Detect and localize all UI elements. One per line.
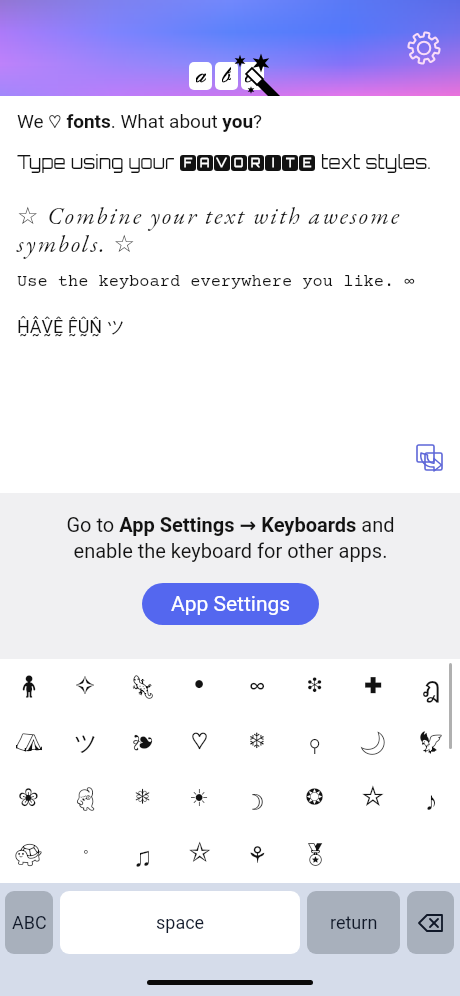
button[interactable]: Settings [402,26,446,70]
button[interactable]: ♫ [114,827,171,883]
button[interactable]: ABC [5,891,53,954]
staticText: Type using your [17,151,180,174]
staticText: 🏅 [301,842,329,868]
staticText: ⚘ [247,842,268,869]
staticText: ∞ [250,674,265,701]
staticText: b [222,62,231,90]
button[interactable]: 🦅 [402,715,460,771]
button[interactable]: return [307,891,400,954]
staticText: 🧍 [15,674,43,700]
staticText: ❉ [307,670,323,704]
staticText: ♫ [135,832,150,879]
staticText: Ĥ̰Â̰V̰̂Ḛ̂ F̰̂Ṵ̂N̰̂ ツ [17,316,126,339]
staticText: ⚲ [309,720,321,767]
button[interactable]: ✧ [57,659,114,715]
staticText: ☆ [361,780,385,819]
staticText: V [216,156,228,170]
staticText: ❧ [132,724,154,763]
staticText: ฎ [422,665,441,710]
staticText: ❄ [249,725,265,761]
staticText: I [272,156,275,170]
button[interactable]: ❀ [0,771,57,827]
staticText: ✩ [188,836,212,875]
button[interactable]: ❄ [228,715,286,771]
button[interactable]: 🌙 [344,715,402,771]
staticText: ☽ [251,776,264,823]
button[interactable]: Copy text [410,438,448,476]
button[interactable]: 🕺 [57,771,114,827]
button[interactable]: • [171,659,228,715]
button[interactable]: ∞ [228,659,286,715]
button[interactable]: Backspace [407,891,454,954]
button[interactable]: space [60,891,300,954]
staticText: ♡ [191,724,209,763]
staticText: ❅ [135,781,151,817]
staticText: ✚ [364,669,383,706]
button[interactable]: ❂ [286,771,344,827]
staticText: Go to App Settings → Keyboards and enabl… [66,513,395,563]
staticText: ❂ [305,780,325,819]
button[interactable]: ❧ [114,715,171,771]
staticText: 🦅 [417,730,445,756]
staticText: ⛺ [15,730,43,756]
staticText: R [251,156,261,170]
staticText: F [184,156,192,170]
staticText: 🐢 [14,842,44,869]
staticText: text styles. [316,151,432,174]
staticText: O [234,156,244,170]
staticText: ☆ Combine your text with awesome symbols… [17,200,417,259]
button[interactable]: ⚲ [286,715,344,771]
staticText: ☀ [190,782,209,816]
button[interactable]: App Settings [142,583,319,625]
button[interactable]: ⚘ [228,827,286,883]
staticText: space [156,912,205,933]
staticText: 🦎 [128,674,158,701]
button[interactable]: ❉ [286,659,344,715]
staticText: ❀ [18,780,39,819]
button[interactable]: ⛺ [0,715,57,771]
staticText: • [194,668,205,707]
button[interactable]: ฎ [402,659,460,715]
button[interactable]: ❅ [114,771,171,827]
button[interactable]: ☽ [228,771,286,827]
button[interactable]: ☆ [344,771,402,827]
staticText: Use the keyboard everywhere you like. ∞ [17,273,415,292]
button[interactable]: 🦎 [114,659,171,715]
staticText: ABC [12,912,47,933]
button[interactable]: 🧍 [0,659,57,715]
button[interactable]: 🐢 [0,827,57,883]
button[interactable]: 🏅 [286,827,344,883]
button[interactable]: ☀ [171,771,228,827]
button[interactable]: ツ [57,715,114,771]
button[interactable]: ♡ [171,715,228,771]
button[interactable]: ✚ [344,659,402,715]
staticText: E [303,156,312,170]
button[interactable]: ∘ [57,827,114,883]
staticText: ✧ [75,668,96,707]
staticText: A [200,156,210,170]
staticText: We ♡ fonts. What about you? [17,109,263,140]
button[interactable]: ♪ [402,771,460,827]
staticText: ツ [74,729,98,758]
staticText: ♪ [426,776,437,823]
staticText: c [245,62,253,90]
staticText: App Settings [171,592,291,617]
staticText: a [196,62,206,90]
staticText: T [286,156,295,170]
staticText: 🕺 [71,786,101,813]
button[interactable]: ✩ [171,827,228,883]
staticText: ∘ [83,838,89,872]
staticText: return [330,912,378,933]
staticText: 🌙 [358,730,388,757]
